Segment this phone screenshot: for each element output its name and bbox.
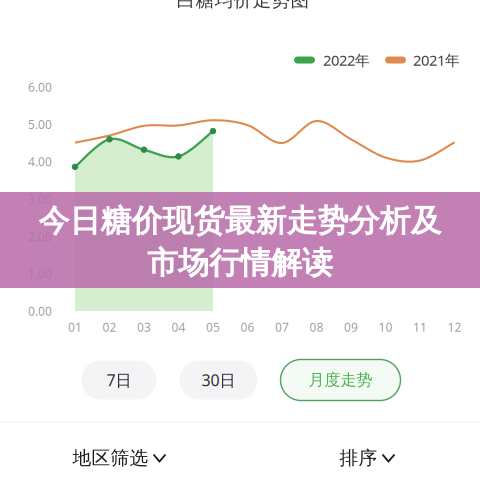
staticText: 0.00 bbox=[28, 303, 52, 319]
staticText: 2022年 bbox=[323, 50, 370, 70]
staticText: 10 bbox=[378, 319, 392, 335]
staticText: 2021年 bbox=[413, 50, 460, 70]
staticText: 2.00 bbox=[28, 228, 52, 244]
button[interactable]: 7日 bbox=[81, 360, 156, 399]
staticText: 30日 bbox=[201, 369, 235, 391]
button[interactable]: 30日 bbox=[179, 360, 257, 399]
staticText: 7日 bbox=[106, 369, 131, 391]
staticText: 01 bbox=[68, 319, 82, 335]
staticText: 白糖均价走势图 bbox=[176, 0, 309, 11]
staticText: 02 bbox=[102, 319, 116, 335]
staticText: 5.00 bbox=[28, 116, 52, 132]
staticText: 08 bbox=[309, 319, 323, 335]
staticText: 06 bbox=[240, 319, 254, 335]
staticText: 今日糖价现货最新走势分析及 bbox=[38, 201, 441, 240]
staticText: 排序 bbox=[339, 446, 377, 469]
staticText: 6.00 bbox=[28, 79, 52, 95]
staticText: 04 bbox=[171, 319, 185, 335]
button[interactable]: 月度走势 bbox=[280, 359, 400, 400]
staticText: 11 bbox=[413, 319, 427, 335]
staticText: 市场行情解读 bbox=[147, 243, 333, 282]
button[interactable]: 地区筛选 bbox=[66, 438, 171, 477]
staticText: 3.00 bbox=[28, 191, 52, 207]
staticText: 月度走势 bbox=[308, 370, 372, 390]
staticText: 09 bbox=[344, 319, 358, 335]
staticText: 12 bbox=[447, 319, 461, 335]
staticText: 05 bbox=[206, 319, 220, 335]
staticText: 地区筛选 bbox=[72, 446, 148, 469]
staticText: 07 bbox=[275, 319, 289, 335]
staticText: 4.00 bbox=[28, 154, 52, 170]
button[interactable]: 排序 bbox=[333, 438, 400, 477]
staticText: 1.00 bbox=[28, 266, 52, 282]
staticText: 03 bbox=[137, 319, 151, 335]
